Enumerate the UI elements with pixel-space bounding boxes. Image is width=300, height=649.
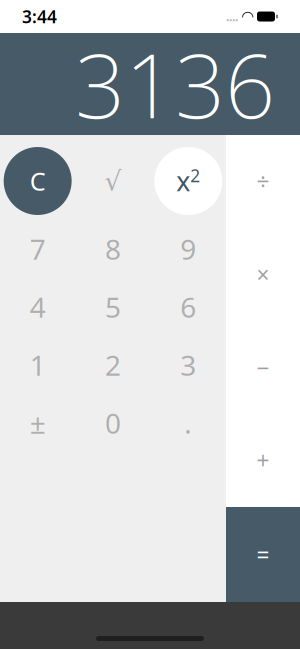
staticText: + — [256, 445, 269, 475]
button[interactable]: C — [0, 142, 75, 220]
staticText: − — [256, 352, 269, 382]
staticText: 0 — [105, 404, 121, 442]
button[interactable]: 3 — [151, 336, 226, 394]
staticText: 2 — [105, 346, 121, 384]
button[interactable]: + — [226, 414, 300, 507]
button[interactable]: ± — [0, 394, 75, 452]
staticText: ÷ — [256, 166, 269, 196]
button[interactable]: 9 — [151, 220, 226, 278]
staticText: 4 — [30, 288, 46, 326]
staticText: 9 — [180, 230, 196, 268]
staticText: = — [256, 539, 269, 569]
staticText: × — [256, 259, 269, 289]
button[interactable]: 0 — [75, 394, 151, 452]
staticText: .... — [226, 8, 238, 24]
button[interactable]: 8 — [75, 220, 151, 278]
staticText: 6 — [180, 288, 196, 326]
staticText: 7 — [30, 230, 46, 268]
button[interactable]: 7 — [0, 220, 75, 278]
staticText: C — [30, 164, 46, 198]
staticText: 1 — [30, 346, 46, 384]
staticText: 5 — [105, 288, 121, 326]
button[interactable]: − — [226, 321, 300, 414]
button[interactable]: 2 — [75, 336, 151, 394]
staticText: x — [176, 163, 190, 199]
button[interactable]: ÷ — [226, 135, 300, 228]
button[interactable]: x — [151, 142, 226, 220]
button[interactable]: = — [226, 507, 300, 602]
staticText: ◠ — [242, 8, 253, 25]
staticText: 3136 — [75, 26, 275, 142]
button[interactable]: √ — [75, 142, 151, 220]
button[interactable]: 6 — [151, 278, 226, 336]
staticText: ± — [30, 404, 46, 442]
button[interactable]: × — [226, 228, 300, 321]
staticText: . — [184, 404, 192, 442]
staticText: 2 — [190, 164, 200, 187]
staticText: 8 — [105, 230, 121, 268]
staticText: 3 — [180, 346, 196, 384]
button[interactable]: 5 — [75, 278, 151, 336]
staticText: 3:44 — [22, 5, 57, 28]
staticText: √ — [104, 166, 121, 196]
button[interactable]: 1 — [0, 336, 75, 394]
button[interactable]: 4 — [0, 278, 75, 336]
